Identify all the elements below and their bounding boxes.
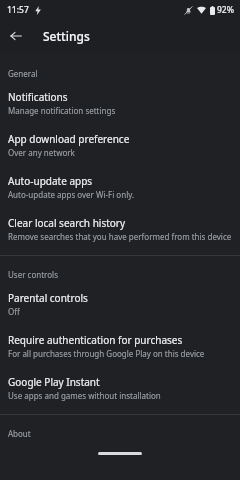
staticText: User controls	[8, 269, 58, 280]
button[interactable]: Parental controls	[0, 282, 240, 324]
button[interactable]: Back	[0, 20, 32, 52]
staticText: Auto-update apps over Wi-Fi only.	[8, 189, 135, 200]
staticText: For all purchases through Google Play on…	[8, 348, 205, 359]
staticText: General	[8, 68, 38, 79]
staticText: Auto-update apps	[8, 174, 93, 188]
staticText: 92%	[217, 4, 234, 16]
button[interactable]: Clear local search history	[0, 207, 240, 249]
staticText: Manage notification settings	[8, 105, 116, 116]
staticText: Parental controls	[8, 291, 88, 305]
staticText: About	[8, 428, 31, 439]
staticText: Settings	[43, 28, 90, 44]
staticText: Clear local search history	[8, 216, 126, 230]
staticText: Require authentication for purchases	[8, 333, 183, 347]
staticText: App download preference	[8, 132, 130, 146]
staticText: Notifications	[8, 90, 68, 104]
staticText: Use apps and games without installation	[8, 390, 161, 401]
button[interactable]: Auto-update apps	[0, 165, 240, 207]
staticText: 11:57	[7, 4, 29, 16]
button[interactable]: App download preference	[0, 123, 240, 165]
staticText: Off	[8, 306, 20, 317]
staticText: Google Play Instant	[8, 375, 100, 389]
button[interactable]: Google Play Instant	[0, 366, 240, 408]
staticText: Over any network	[8, 147, 75, 158]
button[interactable]: Notifications	[0, 81, 240, 123]
staticText: Remove searches that you have performed …	[8, 231, 232, 242]
button[interactable]: Require authentication for purchases	[0, 324, 240, 366]
